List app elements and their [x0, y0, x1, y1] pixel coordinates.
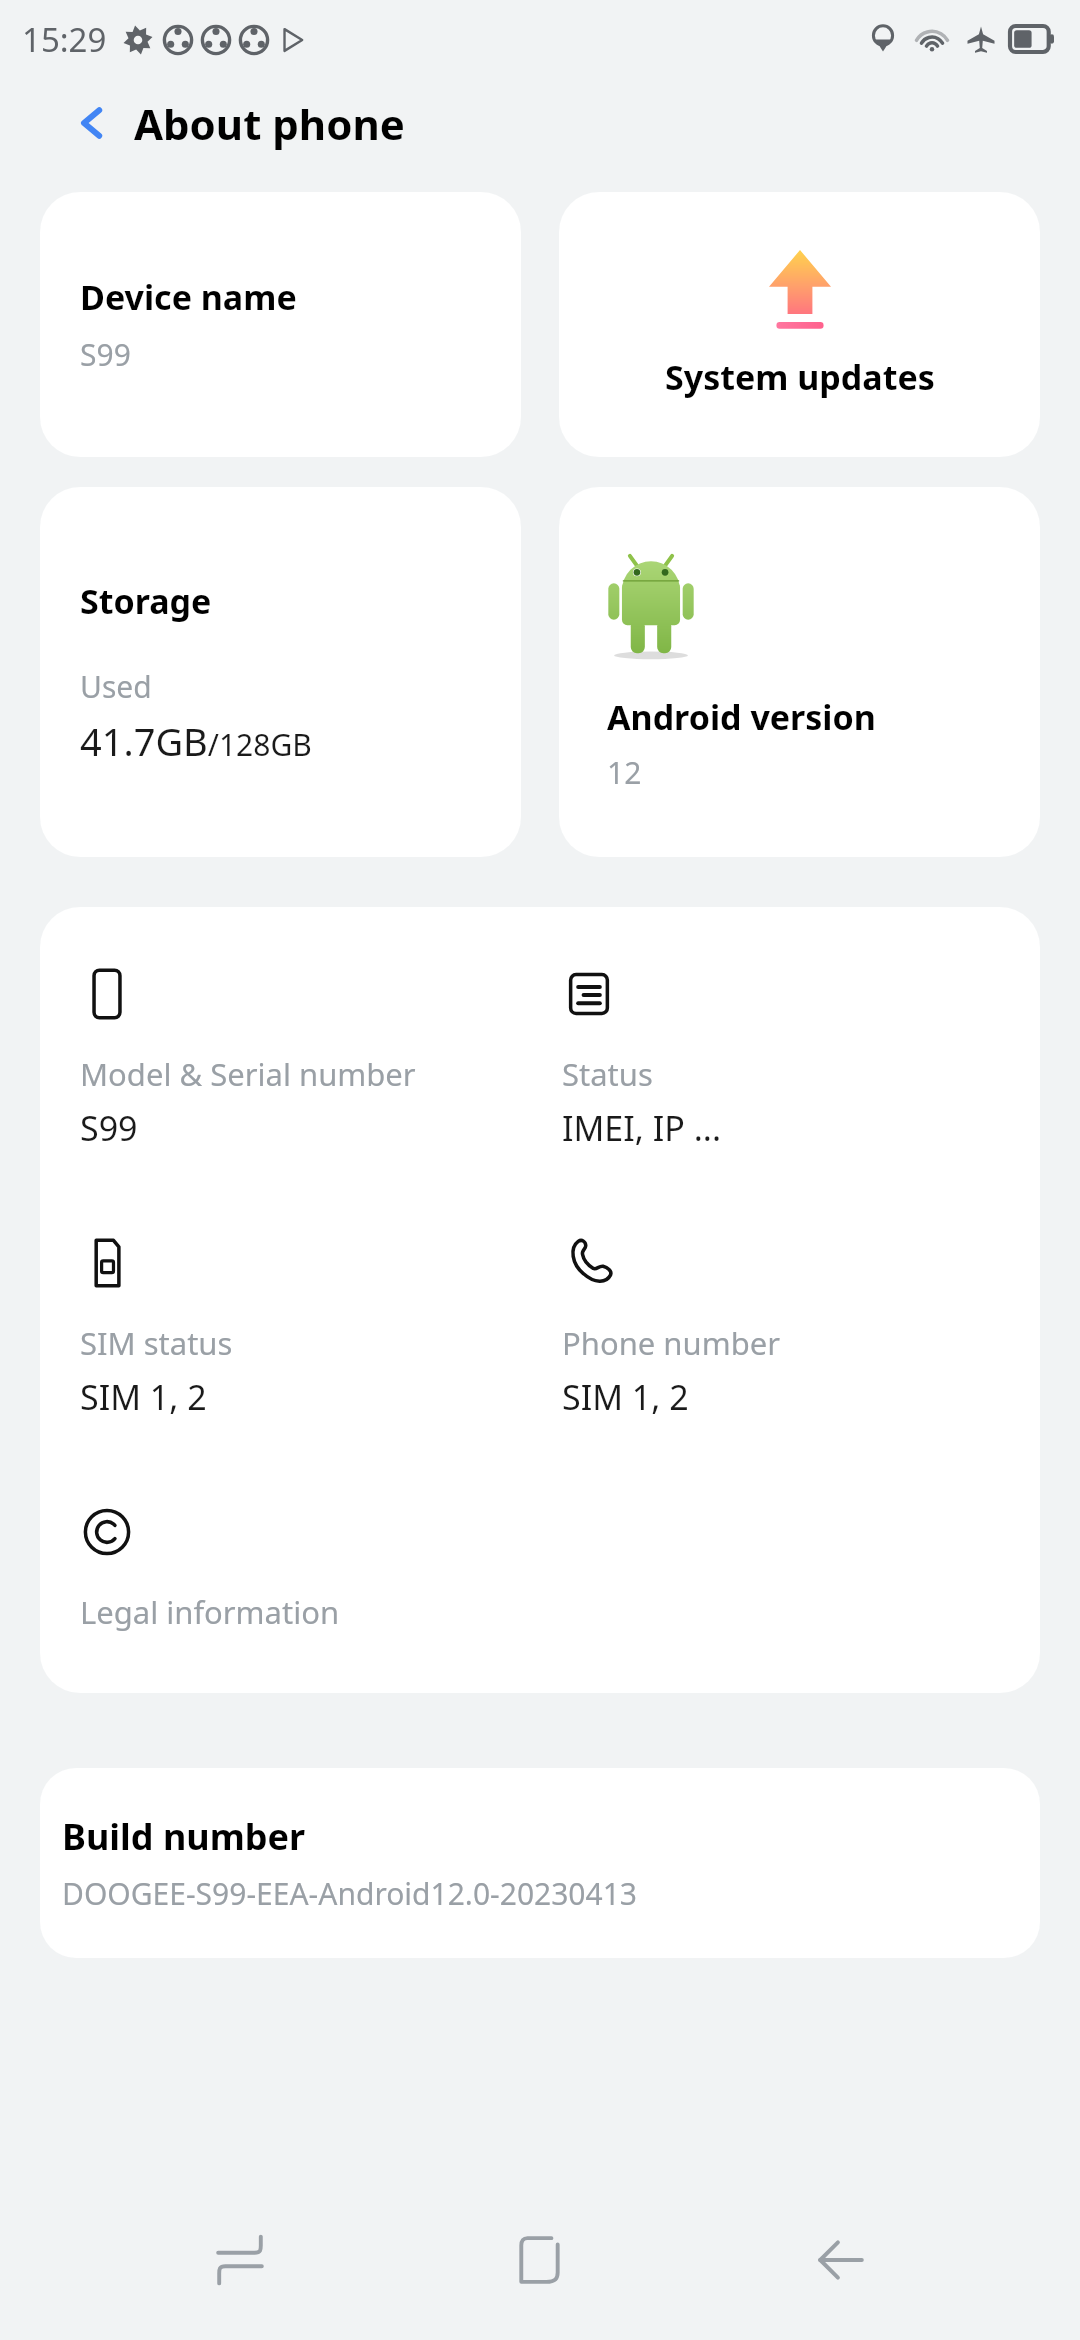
button[interactable]: Recents [180, 2200, 300, 2320]
other: Phone number [562, 1236, 616, 1290]
staticText: SIM 1, 2 [80, 1374, 207, 1420]
staticText: Storage [80, 578, 212, 624]
other: SIM status [80, 1236, 134, 1290]
staticText: 41.7GB/128GB [80, 715, 312, 767]
staticText: 15:29 [22, 17, 107, 62]
button[interactable]: Status [540, 967, 1040, 1151]
button[interactable]: Phone number [540, 1236, 1040, 1420]
staticText: DOOGEE-S99-EEA-Android12.0-20230413 [62, 1873, 638, 1914]
staticText: Device name [80, 274, 297, 320]
staticText: Phone number [562, 1322, 781, 1364]
button[interactable]: Home [480, 2200, 600, 2320]
button[interactable]: Model and serial number [40, 967, 540, 1151]
staticText: Android version [607, 694, 876, 740]
staticText: 12 [607, 752, 642, 793]
staticText: S99 [80, 334, 131, 375]
button[interactable]: Android version [559, 487, 1040, 857]
button[interactable]: System updates [559, 192, 1040, 457]
staticText: S99 [80, 1105, 138, 1151]
other: Status [562, 967, 616, 1021]
staticText: Model & Serial number [80, 1053, 416, 1095]
staticText: Build number [62, 1812, 306, 1861]
button[interactable]: Device name [40, 192, 521, 457]
button[interactable]: Build number [40, 1768, 1040, 1958]
button[interactable]: Back [64, 95, 120, 151]
staticText: Used [80, 666, 152, 707]
other: Model and serial number [80, 967, 134, 1021]
staticText: System updates [665, 354, 935, 400]
button[interactable]: Back [780, 2200, 900, 2320]
staticText: Status [562, 1053, 653, 1095]
staticText: SIM 1, 2 [562, 1374, 689, 1420]
staticText: SIM status [80, 1322, 233, 1364]
other: Legal information [80, 1505, 134, 1559]
staticText: About phone [134, 95, 405, 152]
button[interactable]: Legal information [40, 1505, 540, 1633]
staticText: IMEI, IP ... [562, 1105, 722, 1151]
staticText: Legal information [80, 1591, 340, 1633]
button[interactable]: Storage [40, 487, 521, 857]
button[interactable]: SIM status [40, 1236, 540, 1420]
